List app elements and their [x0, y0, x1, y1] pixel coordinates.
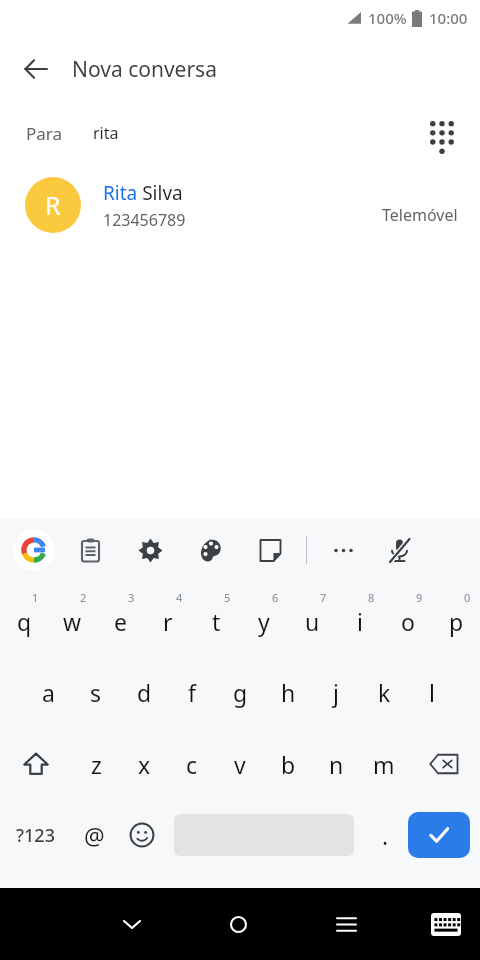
- staticText: 9: [416, 590, 423, 605]
- staticText: 6: [272, 590, 279, 605]
- button[interactable]: 2: [48, 582, 96, 656]
- button[interactable]: @: [70, 800, 118, 870]
- button[interactable]: Google: [12, 528, 56, 572]
- staticText: m: [373, 749, 395, 780]
- staticText: t: [212, 606, 221, 637]
- button[interactable]: n: [312, 728, 360, 800]
- button[interactable]: 8: [336, 582, 384, 656]
- staticText: R: [45, 188, 61, 222]
- staticText: i: [357, 606, 363, 637]
- button[interactable]: Send: [408, 812, 470, 858]
- staticText: v: [234, 749, 246, 780]
- staticText: f: [188, 677, 196, 708]
- button[interactable]: 9: [384, 582, 432, 656]
- button[interactable]: j: [312, 656, 360, 728]
- button[interactable]: Emoji: [118, 800, 166, 870]
- staticText: 0: [464, 590, 471, 605]
- button[interactable]: 3: [96, 582, 144, 656]
- staticText: 8: [368, 590, 375, 605]
- staticText: 10:00: [429, 8, 468, 28]
- staticText: e: [114, 606, 127, 637]
- button[interactable]: .: [362, 800, 408, 870]
- staticText: 123456789: [103, 209, 186, 231]
- staticText: d: [137, 677, 152, 708]
- button[interactable]: m: [360, 728, 408, 800]
- button[interactable]: Backspace: [408, 728, 480, 800]
- staticText: x: [138, 749, 151, 780]
- staticText: @: [84, 820, 105, 851]
- button[interactable]: 6: [240, 582, 288, 656]
- staticText: z: [91, 749, 102, 780]
- staticText: w: [63, 606, 82, 637]
- staticText: y: [258, 606, 270, 637]
- staticText: u: [305, 606, 320, 637]
- button[interactable]: Dialpad: [418, 109, 466, 157]
- staticText: a: [42, 677, 55, 708]
- staticText: h: [281, 677, 296, 708]
- staticText: 1: [32, 590, 39, 605]
- button[interactable]: c: [168, 728, 216, 800]
- staticText: j: [333, 677, 339, 708]
- staticText: n: [329, 749, 344, 780]
- staticText: ?123: [16, 823, 55, 848]
- button[interactable]: x: [120, 728, 168, 800]
- button[interactable]: h: [264, 656, 312, 728]
- button[interactable]: v: [216, 728, 264, 800]
- staticText: .: [382, 820, 389, 851]
- button[interactable]: 7: [288, 582, 336, 656]
- staticText: 100%: [368, 8, 407, 28]
- button[interactable]: Handwriting: [250, 530, 290, 570]
- staticText: k: [378, 677, 391, 708]
- staticText: 2: [80, 590, 87, 605]
- staticText: 5: [224, 590, 231, 605]
- button[interactable]: Switch keyboard: [424, 902, 468, 946]
- button[interactable]: More options: [323, 530, 363, 570]
- button[interactable]: Clipboard: [70, 530, 110, 570]
- button[interactable]: 4: [144, 582, 192, 656]
- button[interactable]: Recents: [322, 900, 370, 948]
- button[interactable]: 1: [0, 582, 48, 656]
- staticText: b: [281, 749, 296, 780]
- button[interactable]: Shift: [0, 728, 72, 800]
- button[interactable]: R: [0, 164, 480, 246]
- staticText: Rita Silva: [103, 180, 183, 206]
- staticText: o: [401, 606, 415, 637]
- button[interactable]: l: [408, 656, 456, 728]
- staticText: p: [449, 606, 464, 637]
- staticText: r: [163, 606, 173, 637]
- button[interactable]: s: [72, 656, 120, 728]
- staticText: Nova conversa: [72, 55, 217, 84]
- button[interactable]: a: [24, 656, 72, 728]
- staticText: g: [233, 677, 248, 708]
- button[interactable]: g: [216, 656, 264, 728]
- button[interactable]: 5: [192, 582, 240, 656]
- staticText: 4: [176, 590, 183, 605]
- button[interactable]: z: [72, 728, 120, 800]
- button[interactable]: f: [168, 656, 216, 728]
- button[interactable]: Home: [214, 900, 262, 948]
- button[interactable]: 0: [432, 582, 480, 656]
- button[interactable]: Settings: [130, 530, 170, 570]
- button[interactable]: Back: [8, 41, 64, 97]
- staticText: rita: [93, 122, 119, 144]
- staticText: l: [429, 677, 435, 708]
- button[interactable]: Themes: [190, 530, 230, 570]
- button[interactable]: Hide keyboard: [108, 900, 156, 948]
- button[interactable]: Voice input off: [379, 530, 419, 570]
- staticText: Para: [26, 122, 63, 145]
- staticText: s: [90, 677, 102, 708]
- button[interactable]: d: [120, 656, 168, 728]
- button[interactable]: ?123: [0, 800, 70, 870]
- staticText: 7: [320, 590, 327, 605]
- staticText: c: [186, 749, 198, 780]
- staticText: Telemóvel: [382, 204, 458, 226]
- staticText: 3: [128, 590, 135, 605]
- button[interactable]: k: [360, 656, 408, 728]
- staticText: q: [17, 606, 32, 637]
- button[interactable]: b: [264, 728, 312, 800]
